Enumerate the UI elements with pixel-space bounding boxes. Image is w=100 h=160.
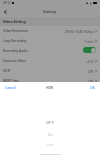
button[interactable]: Recording Audio — [0, 46, 100, 56]
staticText: 2560×1440 60fps — [65, 29, 94, 34]
staticText: ▲ — [90, 2, 92, 5]
staticText: On — [48, 132, 53, 136]
staticText: Auto — [47, 143, 54, 147]
staticText: Exposure Value — [3, 59, 26, 63]
staticText: WDR Time — [3, 79, 19, 83]
staticText: 1 min — [84, 39, 94, 44]
staticText: HDR — [46, 85, 54, 90]
button[interactable]: Back — [0, 6, 10, 17]
button[interactable]: Video Resolution — [0, 26, 100, 36]
staticText: Off — [88, 69, 94, 74]
staticText: +0.0 — [86, 59, 94, 64]
button[interactable]: Loop Recording — [0, 36, 100, 46]
staticText: HDR — [3, 69, 10, 73]
staticText: 09:12 — [3, 1, 11, 5]
staticText: ● — [86, 2, 89, 5]
button[interactable]: Cancel — [5, 82, 16, 92]
staticText: Off — [88, 79, 94, 84]
staticText: Cancel — [5, 85, 16, 90]
button[interactable]: Exposure Value — [0, 56, 100, 66]
staticText: OK — [90, 85, 95, 90]
staticText: Video Resolution — [3, 29, 29, 33]
button[interactable]: WDR Time — [0, 76, 100, 86]
button[interactable]: OK — [90, 82, 95, 92]
staticText: Video Setting — [3, 19, 26, 24]
staticText: Settings — [43, 9, 57, 14]
staticText: Recording Audio — [3, 49, 28, 53]
staticText: OFF — [46, 120, 54, 125]
button[interactable]: HDR — [0, 66, 100, 76]
staticText: Loop Recording — [3, 39, 27, 43]
